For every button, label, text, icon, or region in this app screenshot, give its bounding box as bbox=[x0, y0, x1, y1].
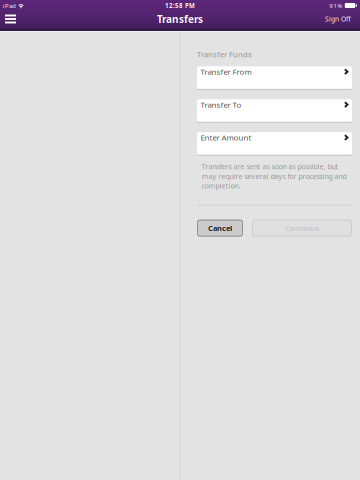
staticText: Transfer To bbox=[200, 99, 241, 110]
button[interactable]: Cancel bbox=[197, 220, 243, 237]
button[interactable]: Menu bbox=[0, 9, 22, 28]
staticText: Transfer From bbox=[200, 66, 251, 77]
staticText: Transfers bbox=[157, 12, 203, 26]
staticText: 91% bbox=[329, 1, 342, 10]
button[interactable]: Enter Amount bbox=[197, 132, 352, 156]
button[interactable]: Continue bbox=[252, 220, 352, 237]
staticText: 12:58 PM bbox=[165, 1, 195, 10]
staticText: Continue bbox=[285, 223, 319, 233]
staticText: Enter Amount bbox=[200, 132, 251, 143]
button[interactable]: Transfer From bbox=[197, 66, 352, 90]
staticText: Transfers are sent as soon as possible, … bbox=[201, 162, 346, 191]
staticText: Transfer Funds bbox=[197, 49, 252, 59]
button[interactable]: Sign Off bbox=[319, 9, 360, 28]
button[interactable]: Transfer To bbox=[197, 99, 352, 123]
staticText: Cancel bbox=[208, 223, 232, 233]
staticText: iPad bbox=[3, 1, 16, 10]
staticText: Sign Off bbox=[325, 14, 351, 24]
